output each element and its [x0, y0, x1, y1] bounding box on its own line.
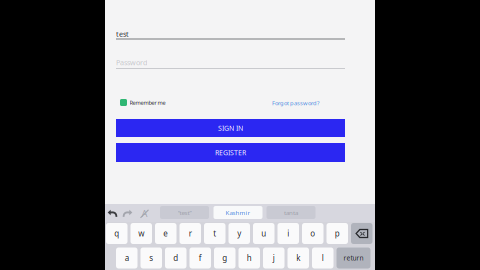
- staticText: u: [261, 228, 266, 239]
- button[interactable]: w: [130, 223, 152, 244]
- staticText: q: [114, 228, 119, 239]
- staticText: “test”: [177, 208, 191, 217]
- staticText: w: [138, 228, 144, 239]
- button[interactable]: r: [179, 223, 201, 244]
- button[interactable]: Undo: [104, 206, 120, 220]
- button[interactable]: d: [165, 247, 186, 268]
- button[interactable]: Autocorrect off: [136, 206, 152, 220]
- button[interactable]: e: [155, 223, 176, 244]
- staticText: f: [199, 253, 202, 263]
- button[interactable]: i: [277, 223, 299, 244]
- button[interactable]: a: [116, 247, 137, 268]
- button[interactable]: y: [228, 223, 250, 244]
- button[interactable]: test: [116, 27, 345, 41]
- button[interactable]: f: [189, 247, 211, 268]
- staticText: h: [247, 253, 252, 263]
- button[interactable]: “test”: [160, 206, 209, 219]
- button[interactable]: q: [106, 223, 127, 244]
- button[interactable]: Kashmir: [213, 206, 262, 219]
- button[interactable]: h: [238, 247, 260, 268]
- button[interactable]: Redo: [119, 206, 135, 220]
- button[interactable]: s: [140, 247, 162, 268]
- staticText: j: [273, 253, 275, 263]
- staticText: a: [125, 253, 129, 263]
- button[interactable]: g: [214, 247, 235, 268]
- staticText: A: [141, 207, 147, 220]
- button[interactable]: return: [336, 247, 370, 268]
- button[interactable]: t: [204, 223, 225, 244]
- staticText: l: [322, 253, 324, 263]
- button[interactable]: Delete: [351, 223, 372, 244]
- button[interactable]: SIGN IN: [116, 119, 345, 137]
- staticText: REGISTER: [215, 148, 246, 157]
- staticText: r: [189, 228, 192, 239]
- staticText: Kashmir: [225, 208, 250, 217]
- button[interactable]: Forgot password?: [249, 98, 319, 108]
- staticText: i: [287, 228, 289, 239]
- staticText: SIGN IN: [218, 123, 243, 133]
- staticText: g: [222, 253, 227, 263]
- staticText: Remember me: [129, 99, 165, 106]
- button[interactable]: l: [312, 247, 333, 268]
- staticText: o: [310, 228, 315, 239]
- staticText: k: [296, 253, 300, 263]
- staticText: y: [237, 228, 241, 239]
- staticText: d: [173, 253, 178, 263]
- button[interactable]: k: [287, 247, 309, 268]
- staticText: Password: [116, 58, 147, 67]
- staticText: t: [213, 228, 216, 239]
- staticText: s: [149, 253, 153, 263]
- staticText: tanta: [284, 208, 298, 217]
- staticText: return: [343, 253, 363, 263]
- staticText: Forgot password?: [272, 99, 319, 107]
- button[interactable]: p: [326, 223, 348, 244]
- staticText: test: [116, 29, 129, 39]
- button[interactable]: REGISTER: [116, 143, 345, 162]
- button[interactable]: tanta: [266, 206, 315, 219]
- staticText: p: [335, 228, 340, 239]
- button[interactable]: o: [302, 223, 323, 244]
- button[interactable]: j: [263, 247, 284, 268]
- button[interactable]: Password: [116, 55, 345, 69]
- button[interactable]: u: [253, 223, 274, 244]
- button[interactable]: Remember me: [120, 97, 190, 107]
- staticText: e: [163, 228, 168, 239]
